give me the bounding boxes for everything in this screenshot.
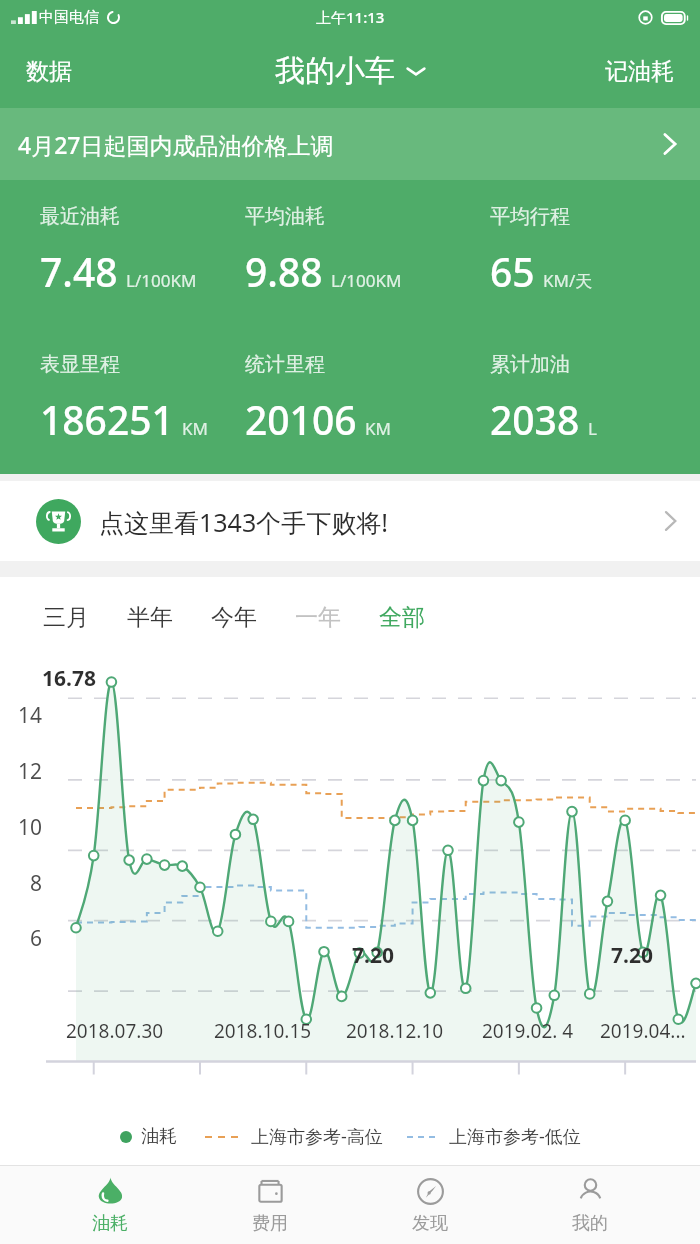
staticText: 累计加油 (490, 352, 570, 377)
button[interactable]: 数据 (0, 45, 98, 98)
staticText: 油耗 (141, 1125, 177, 1148)
staticText: KM/天 (543, 269, 593, 292)
button[interactable]: 最近油耗 (40, 204, 245, 298)
staticText: 油耗 (92, 1212, 128, 1235)
staticText: 一年 (295, 603, 341, 632)
staticText: 发现 (412, 1212, 448, 1235)
button[interactable]: 三月 (24, 597, 108, 638)
button[interactable]: 累计加油 (490, 352, 700, 446)
staticText: 9.88 (245, 245, 323, 298)
staticText: 记油耗 (605, 57, 674, 86)
staticText: 14 (18, 701, 43, 730)
staticText: 7.20 (611, 941, 653, 970)
staticText: 12 (18, 757, 43, 786)
staticText: 65 (490, 245, 535, 298)
button[interactable]: 4月27日起国内成品油价格上调 (0, 108, 700, 180)
button[interactable]: 油耗 (60, 1170, 160, 1241)
staticText: 费用 (252, 1212, 288, 1235)
staticText: 上午11:13 (316, 7, 385, 27)
staticText: 我的小车 (275, 52, 395, 90)
staticText: KM (182, 417, 208, 440)
staticText: 我的 (572, 1212, 608, 1235)
staticText: 2038 (490, 393, 580, 446)
button[interactable]: 点这里看1343个手下败将! (0, 481, 700, 561)
staticText: 半年 (127, 603, 173, 632)
staticText: 2019.02. 4 (482, 1018, 574, 1044)
staticText: 186251 (40, 393, 174, 446)
button[interactable]: 发现 (380, 1170, 480, 1241)
staticText: 6 (30, 924, 43, 953)
staticText: 最近油耗 (40, 204, 120, 229)
button[interactable]: 平均行程 (490, 204, 700, 298)
staticText: 全部 (379, 603, 425, 632)
button[interactable]: 我的 (540, 1170, 640, 1241)
staticText: L/100KM (126, 269, 197, 292)
staticText: 8 (30, 869, 43, 898)
staticText: 三月 (43, 603, 89, 632)
staticText: 上海市参考-高位 (251, 1124, 383, 1149)
button[interactable]: 费用 (220, 1170, 320, 1241)
button[interactable]: 全部 (360, 597, 444, 638)
staticText: 2018.12.10 (346, 1018, 444, 1044)
staticText: 2018.10.15 (214, 1018, 312, 1044)
staticText: 7.20 (352, 941, 394, 970)
staticText: 4月27日起国内成品油价格上调 (18, 129, 334, 160)
button[interactable]: 半年 (108, 597, 192, 638)
other: 查看详情 (662, 130, 678, 158)
button[interactable]: 今年 (192, 597, 276, 638)
button[interactable]: 统计里程 (245, 352, 490, 446)
staticText: 平均油耗 (245, 204, 325, 229)
staticText: 10 (18, 813, 43, 842)
staticText: KM (365, 417, 391, 440)
button[interactable]: 表显里程 (40, 352, 245, 446)
button[interactable]: 我的小车 (259, 44, 442, 98)
staticText: 7.48 (40, 245, 118, 298)
button[interactable]: 记油耗 (579, 45, 700, 98)
staticText: 今年 (211, 603, 257, 632)
staticText: 点这里看1343个手下败将! (99, 505, 388, 539)
staticText: 上海市参考-低位 (449, 1124, 581, 1149)
button[interactable]: 一年 (276, 597, 360, 638)
staticText: 20106 (245, 393, 357, 446)
staticText: 16.78 (42, 664, 96, 693)
staticText: 表显里程 (40, 352, 120, 377)
staticText: 中国电信 (39, 8, 99, 27)
staticText: 2018.07.30 (66, 1018, 164, 1044)
staticText: L (588, 417, 597, 440)
staticText: 平均行程 (490, 204, 570, 229)
staticText: 数据 (26, 57, 72, 86)
staticText: 统计里程 (245, 352, 325, 377)
button[interactable]: 平均油耗 (245, 204, 490, 298)
staticText: 2019.04... (600, 1018, 686, 1044)
staticText: L/100KM (331, 269, 402, 292)
